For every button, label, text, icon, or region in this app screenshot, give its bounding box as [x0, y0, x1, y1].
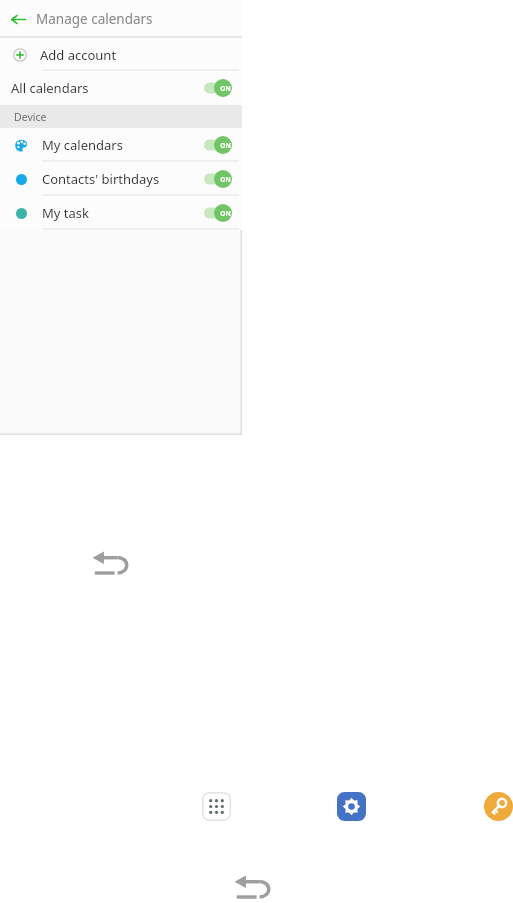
button[interactable]: Add account: [0, 38, 242, 71]
staticText: ON: [220, 141, 231, 150]
button[interactable]: Apps: [202, 792, 231, 821]
button[interactable]: On: [204, 136, 232, 154]
button[interactable]: Manage calendars: [0, 0, 242, 38]
staticText: My task: [42, 204, 89, 222]
staticText: ON: [220, 175, 231, 184]
staticText: ON: [220, 84, 231, 93]
button[interactable]: On: [204, 204, 232, 222]
button[interactable]: My task: [0, 196, 242, 230]
button[interactable]: Back: [233, 873, 271, 903]
button[interactable]: On: [204, 79, 232, 97]
button[interactable]: Back: [91, 549, 129, 579]
staticText: My calendars: [42, 136, 123, 154]
staticText: Add account: [40, 46, 117, 64]
button[interactable]: All calendars: [0, 71, 242, 105]
button[interactable]: My calendars: [0, 128, 242, 162]
button[interactable]: Settings: [337, 792, 366, 821]
button[interactable]: Password: [484, 792, 513, 821]
staticText: Contacts' birthdays: [42, 170, 160, 188]
staticText: Device: [14, 110, 47, 124]
button[interactable]: Contacts' birthdays: [0, 162, 242, 196]
staticText: All calendars: [11, 79, 89, 97]
staticText: ON: [220, 209, 231, 218]
button[interactable]: On: [204, 170, 232, 188]
staticText: Manage calendars: [36, 10, 153, 28]
